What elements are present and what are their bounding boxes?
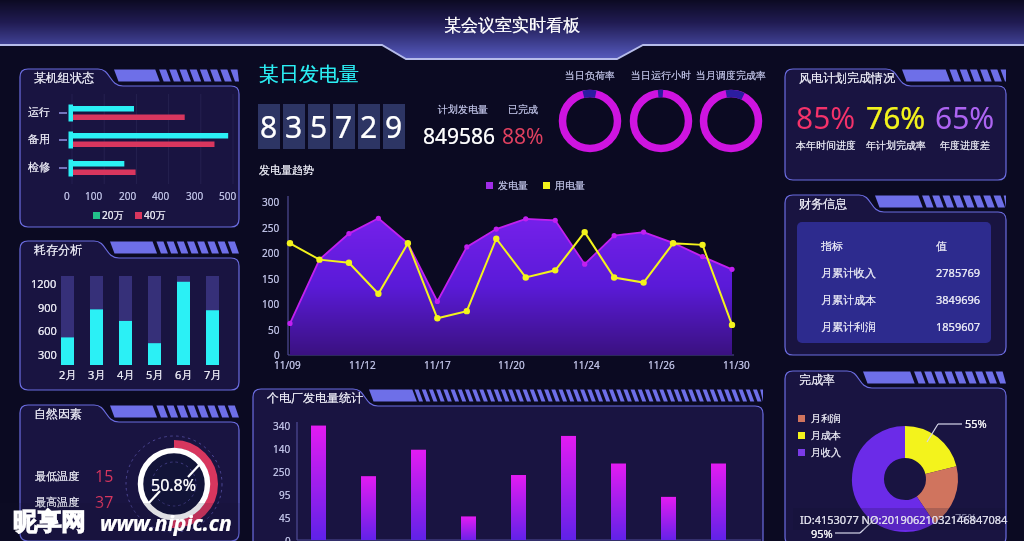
staticText: 财务信息 <box>799 196 847 211</box>
staticText: 耗存分析 <box>34 242 82 257</box>
staticText: 计划发电量 <box>438 103 488 116</box>
staticText: 某日发电量 <box>259 62 359 87</box>
staticText: 250 <box>273 465 291 479</box>
staticText: 1859607 <box>936 319 981 334</box>
staticText: 100 <box>85 189 103 203</box>
staticText: 某会议室实时看板 <box>444 15 580 36</box>
button[interactable]: 财务信息 <box>785 194 1006 355</box>
staticText: ID:4153077 NO:20190621032146847084 <box>800 512 1008 527</box>
staticText: 100 <box>262 297 280 311</box>
staticText: 600 <box>38 323 57 338</box>
staticText: 3月 <box>88 367 106 382</box>
staticText: 50 <box>268 323 280 337</box>
staticText: 849586 <box>423 122 496 151</box>
staticText: 9 <box>385 106 403 147</box>
staticText: 发电量趋势 <box>259 163 314 177</box>
staticText: 7 <box>335 106 353 147</box>
staticText: 已完成 <box>508 103 538 116</box>
staticText: 最低温度 <box>35 469 79 483</box>
staticText: 95 <box>279 488 291 502</box>
staticText: 11/24 <box>573 358 600 372</box>
staticText: 37 <box>95 491 114 513</box>
staticText: 340 <box>273 419 291 433</box>
staticText: 月利润 <box>811 412 841 425</box>
staticText: 2 <box>360 106 378 147</box>
staticText: 风电计划完成情况 <box>799 70 895 85</box>
staticText: 75% <box>955 510 977 525</box>
staticText: 200 <box>262 246 280 260</box>
staticText: 40万 <box>144 208 166 222</box>
staticText: 11/09 <box>274 358 301 372</box>
staticText: 3 <box>285 106 303 147</box>
staticText: 45 <box>279 511 291 525</box>
staticText: 3849696 <box>936 292 981 307</box>
staticText: 7月 <box>204 367 222 382</box>
staticText: 4月 <box>117 367 135 382</box>
staticText: 指标 <box>821 239 936 253</box>
staticText: 备用 <box>28 132 50 146</box>
staticText: www.nipic.cn <box>100 509 232 538</box>
staticText: 6月 <box>175 367 193 382</box>
staticText: 个电厂发电量统计 <box>267 390 363 405</box>
button[interactable]: 完成率 <box>785 370 1006 541</box>
staticText: 15 <box>95 465 114 487</box>
staticText: 月收入 <box>811 446 841 459</box>
staticText: 5月 <box>146 367 164 382</box>
staticText: 月累计成本 <box>821 293 936 307</box>
staticText: 检修 <box>28 160 50 174</box>
staticText: 300 <box>38 347 57 362</box>
staticText: 月累计利润 <box>821 320 936 334</box>
staticText: 运行 <box>28 105 50 119</box>
staticText: 2785769 <box>936 265 981 280</box>
staticText: 300 <box>262 195 280 209</box>
staticText: 月累计收入 <box>821 266 936 280</box>
staticText: 20万 <box>102 208 124 222</box>
staticText: 某机组状态 <box>34 70 94 85</box>
staticText: 0 <box>274 348 280 362</box>
staticText: 95% <box>811 526 833 541</box>
staticText: 用电量 <box>555 179 585 192</box>
button[interactable]: 风电计划完成情况 <box>785 68 1006 180</box>
staticText: 1200 <box>31 276 57 291</box>
staticText: 85% <box>796 97 856 138</box>
button[interactable]: 某机组状态 <box>20 68 239 227</box>
staticText: 11/17 <box>424 358 451 372</box>
staticText: 250 <box>262 221 280 235</box>
staticText: 发电量 <box>498 179 528 192</box>
staticText: 当日运行小时 <box>631 69 691 82</box>
staticText: 150 <box>262 272 280 286</box>
staticText: 0 <box>285 534 291 541</box>
staticText: 11/12 <box>349 358 376 372</box>
staticText: 5 <box>310 106 328 147</box>
staticText: 自然因素 <box>34 406 82 421</box>
staticText: 年计划完成率 <box>866 139 926 152</box>
staticText: 55% <box>965 416 987 431</box>
staticText: 11/26 <box>648 358 675 372</box>
staticText: 11/20 <box>498 358 525 372</box>
staticText: 当月调度完成率 <box>696 69 766 82</box>
staticText: 值 <box>936 239 947 253</box>
staticText: 2月 <box>59 367 77 382</box>
staticText: 月成本 <box>811 429 841 442</box>
staticText: 0 <box>64 189 70 203</box>
staticText: 200 <box>119 189 137 203</box>
staticText: 76% <box>866 97 926 138</box>
button[interactable]: 个电厂发电量统计 <box>253 388 763 541</box>
button[interactable]: 耗存分析 <box>20 240 239 390</box>
staticText: 65% <box>935 97 995 138</box>
staticText: 400 <box>152 189 170 203</box>
staticText: 140 <box>273 442 291 456</box>
staticText: 最高温度 <box>35 495 79 509</box>
staticText: 8 <box>260 106 278 147</box>
staticText: 50.8% <box>151 474 197 496</box>
staticText: 300 <box>186 189 204 203</box>
button[interactable]: 自然因素 <box>20 404 239 541</box>
staticText: 完成率 <box>799 372 835 387</box>
staticText: 年度进度差 <box>940 139 990 152</box>
staticText: 88% <box>502 122 544 151</box>
staticText: 11/30 <box>723 358 750 372</box>
staticText: 900 <box>38 300 57 315</box>
staticText: 500 <box>219 189 237 203</box>
staticText: 本年时间进度 <box>796 139 856 152</box>
staticText: 昵享网 <box>13 507 85 537</box>
